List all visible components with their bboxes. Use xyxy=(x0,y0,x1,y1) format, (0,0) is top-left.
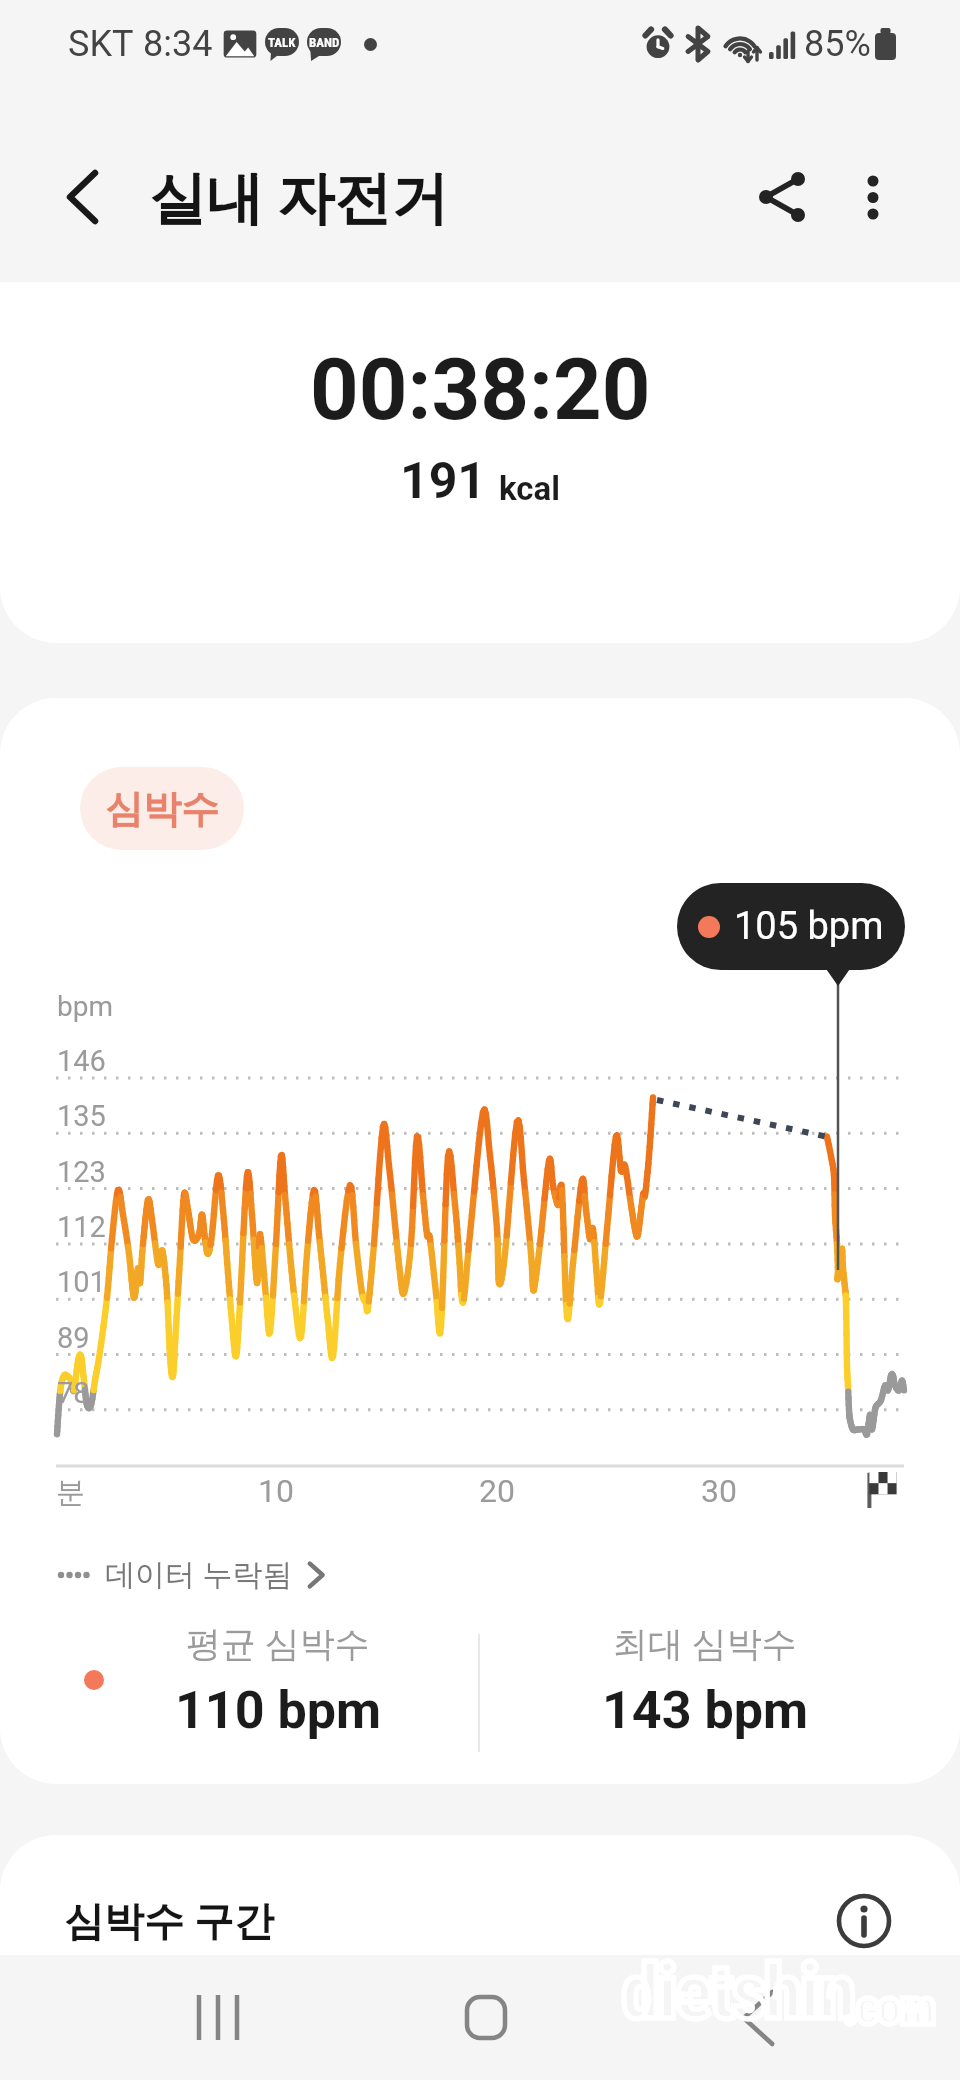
staticText: 105 bpm xyxy=(734,904,884,949)
staticText: 실내 자전거 xyxy=(149,163,449,235)
staticText: TALK xyxy=(268,35,296,50)
staticText: 심박수 xyxy=(105,785,219,833)
staticText: .com xyxy=(843,1979,935,2035)
staticText: 110 bpm xyxy=(175,1680,381,1741)
staticText: 112 xyxy=(57,1210,106,1244)
button[interactable]: 심박수 xyxy=(80,767,244,850)
staticText: dietshin xyxy=(622,1947,854,2036)
button[interactable]: Info xyxy=(836,1893,892,1949)
staticText: 123 xyxy=(57,1155,106,1189)
button[interactable]: Home xyxy=(406,1965,566,2070)
staticText: 최대 심박수 xyxy=(613,1622,797,1666)
staticText: 8:34 xyxy=(143,23,213,65)
staticText: 심박수 구간 xyxy=(64,1896,274,1946)
staticText: 20 xyxy=(479,1472,515,1510)
staticText: 분 xyxy=(56,1474,85,1511)
button[interactable]: Share xyxy=(737,157,817,237)
staticText: 191 xyxy=(400,452,487,511)
button[interactable]: 데이터 누락됨 xyxy=(44,1544,341,1606)
staticText: BAND xyxy=(309,35,340,50)
staticText: SKT xyxy=(68,23,134,65)
button[interactable]: Back xyxy=(678,1965,838,2070)
button[interactable]: Recents xyxy=(138,1965,298,2070)
staticText: 00:38:20 xyxy=(310,340,651,440)
staticText: 135 xyxy=(57,1099,106,1133)
staticText: 85% xyxy=(804,23,871,65)
button[interactable]: Back xyxy=(42,157,122,237)
staticText: kcal xyxy=(499,469,560,508)
staticText: 89 xyxy=(57,1321,90,1355)
staticText: 30 xyxy=(701,1472,737,1510)
staticText: 143 bpm xyxy=(602,1680,808,1741)
staticText: 데이터 누락됨 xyxy=(105,1556,293,1594)
staticText: 146 xyxy=(57,1044,106,1078)
staticText: 평균 심박수 xyxy=(186,1622,370,1666)
staticText: bpm xyxy=(57,990,113,1023)
staticText: 10 xyxy=(258,1472,294,1510)
staticText: 101 xyxy=(57,1265,106,1299)
button[interactable]: More options xyxy=(834,157,914,237)
staticText: 78 xyxy=(57,1376,90,1410)
